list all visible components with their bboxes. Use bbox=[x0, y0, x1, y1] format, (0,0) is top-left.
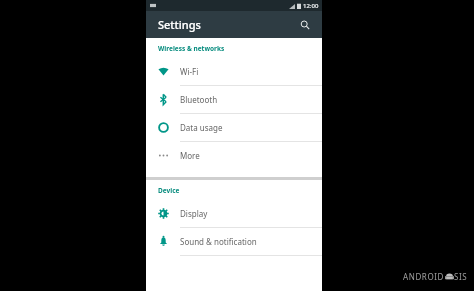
staticText: SIS bbox=[454, 271, 468, 282]
staticText: Wireless & networks bbox=[158, 44, 225, 53]
button[interactable]: More bbox=[146, 142, 322, 169]
button[interactable]: Search bbox=[296, 16, 314, 34]
button[interactable]: Display bbox=[146, 200, 322, 228]
button[interactable]: Sound & notification bbox=[146, 228, 322, 256]
staticText: Data usage bbox=[180, 122, 223, 133]
button[interactable]: Data usage bbox=[146, 114, 322, 142]
staticText: 12:00 bbox=[303, 2, 319, 10]
staticText: More bbox=[180, 150, 200, 161]
staticText: Bluetooth bbox=[180, 94, 218, 105]
staticText: Settings bbox=[158, 17, 201, 32]
button[interactable]: Bluetooth bbox=[146, 86, 322, 114]
staticText: Display bbox=[180, 208, 208, 219]
staticText: ANDROID bbox=[403, 271, 445, 282]
staticText: Wi-Fi bbox=[180, 66, 199, 77]
staticText: Sound & notification bbox=[180, 236, 257, 247]
staticText: Device bbox=[158, 186, 180, 195]
button[interactable]: Wi-Fi bbox=[146, 58, 322, 86]
